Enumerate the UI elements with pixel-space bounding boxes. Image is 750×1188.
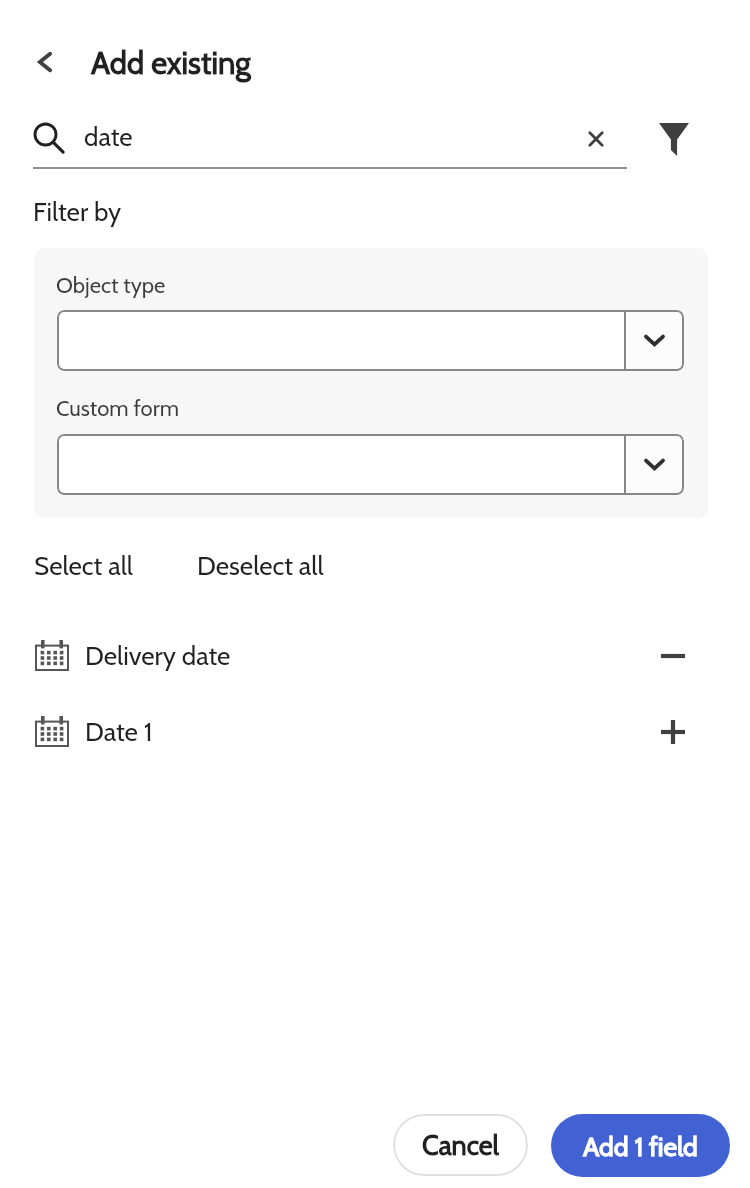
button[interactable]: Add field: [645, 704, 701, 760]
button[interactable]: Remove field: [645, 628, 701, 684]
button[interactable]: Back: [17, 34, 73, 90]
staticText: Date 1: [85, 716, 153, 748]
staticText: Add 1 field: [583, 1130, 698, 1162]
button[interactable]: Filter: [646, 111, 702, 167]
staticText: Select all: [34, 550, 133, 582]
button[interactable]: Delivery date: [0, 621, 750, 697]
staticText: Filter by: [33, 196, 122, 228]
staticText: Custom form: [56, 395, 179, 422]
button[interactable]: Cancel: [393, 1114, 528, 1176]
staticText: Delivery date: [85, 640, 231, 672]
button[interactable]: Deselect all: [184, 542, 337, 590]
staticText: Cancel: [422, 1129, 499, 1162]
staticText: Add existing: [91, 44, 251, 82]
button[interactable]: Date 1: [0, 697, 750, 773]
button[interactable]: Select all: [21, 542, 146, 590]
staticText: date: [84, 121, 133, 153]
button[interactable]: Add 1 field: [551, 1114, 730, 1177]
button[interactable]: Open list: [57, 310, 684, 371]
button[interactable]: Clear search: [572, 115, 620, 163]
button[interactable]: Open list: [57, 434, 684, 495]
staticText: Object type: [56, 272, 166, 299]
staticText: Deselect all: [197, 550, 324, 582]
